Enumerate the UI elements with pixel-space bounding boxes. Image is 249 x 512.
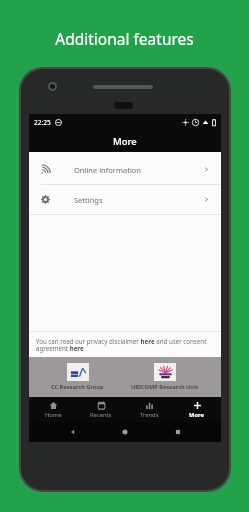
staticText: 22:25 bbox=[34, 118, 51, 127]
staticText: Additional features bbox=[0, 28, 249, 49]
button[interactable]: Home bbox=[29, 397, 77, 422]
button[interactable]: Trends bbox=[125, 397, 173, 422]
button[interactable]: Home bbox=[116, 423, 134, 441]
staticText: CC Research Group bbox=[51, 383, 104, 391]
button[interactable]: You can read our privacy disclaimer here… bbox=[29, 332, 221, 357]
staticText: UBICOMP Research Unit bbox=[131, 383, 199, 391]
button[interactable]: Recent apps bbox=[169, 423, 187, 441]
staticText: Settings bbox=[74, 195, 103, 205]
button[interactable]: CC Research Group bbox=[47, 363, 108, 391]
staticText: Home bbox=[45, 411, 62, 419]
button[interactable]: More bbox=[173, 397, 221, 422]
button[interactable]: Settings bbox=[29, 185, 221, 214]
button[interactable]: Back bbox=[64, 423, 82, 441]
button[interactable]: UBICOMP Research Unit bbox=[127, 363, 203, 391]
button[interactable]: Recents bbox=[77, 397, 125, 422]
staticText: More bbox=[113, 135, 137, 148]
staticText: More bbox=[189, 411, 205, 419]
staticText: Online information bbox=[74, 165, 141, 175]
staticText: Recents bbox=[90, 411, 112, 419]
staticText: Trends bbox=[140, 411, 159, 419]
button[interactable]: Online information bbox=[29, 155, 221, 184]
